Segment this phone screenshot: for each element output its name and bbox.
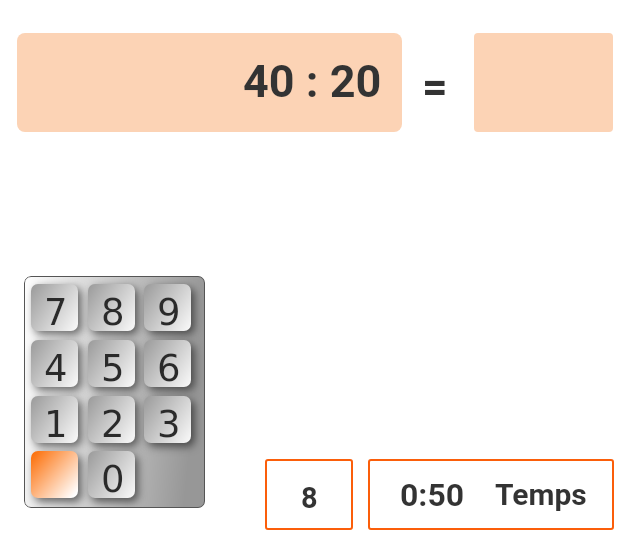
button[interactable]: 0:50 [368, 459, 614, 530]
staticText: 3 [157, 403, 181, 443]
staticText: 0 [101, 458, 125, 498]
staticText: = [422, 60, 448, 113]
button[interactable]: 9 [144, 284, 191, 331]
button[interactable]: 40 : 20 [17, 33, 402, 132]
button[interactable]: 7 [31, 284, 78, 331]
staticText: 5 [101, 347, 125, 387]
button[interactable]: 3 [144, 396, 191, 443]
button[interactable]: 4 [31, 340, 78, 387]
staticText: 8 [101, 291, 125, 331]
staticText: 1 [44, 403, 68, 443]
staticText: 40 : 20 [243, 55, 382, 108]
button[interactable]: 5 [88, 340, 135, 387]
button[interactable]: 8 [265, 459, 353, 530]
staticText: 4 [44, 347, 68, 387]
staticText: 7 [44, 291, 68, 331]
staticText: 9 [157, 291, 181, 331]
staticText: 0:50 [400, 476, 465, 514]
button[interactable]: 8 [88, 284, 135, 331]
button[interactable]: 2 [88, 396, 135, 443]
button[interactable]: 1 [31, 396, 78, 443]
staticText: 8 [301, 481, 318, 515]
staticText: 6 [157, 347, 181, 387]
button[interactable]: Effacer [31, 451, 78, 498]
button[interactable]: 6 [144, 340, 191, 387]
staticText: 2 [101, 403, 125, 443]
staticText: Temps [495, 477, 587, 512]
button[interactable]: 0 [88, 451, 135, 498]
